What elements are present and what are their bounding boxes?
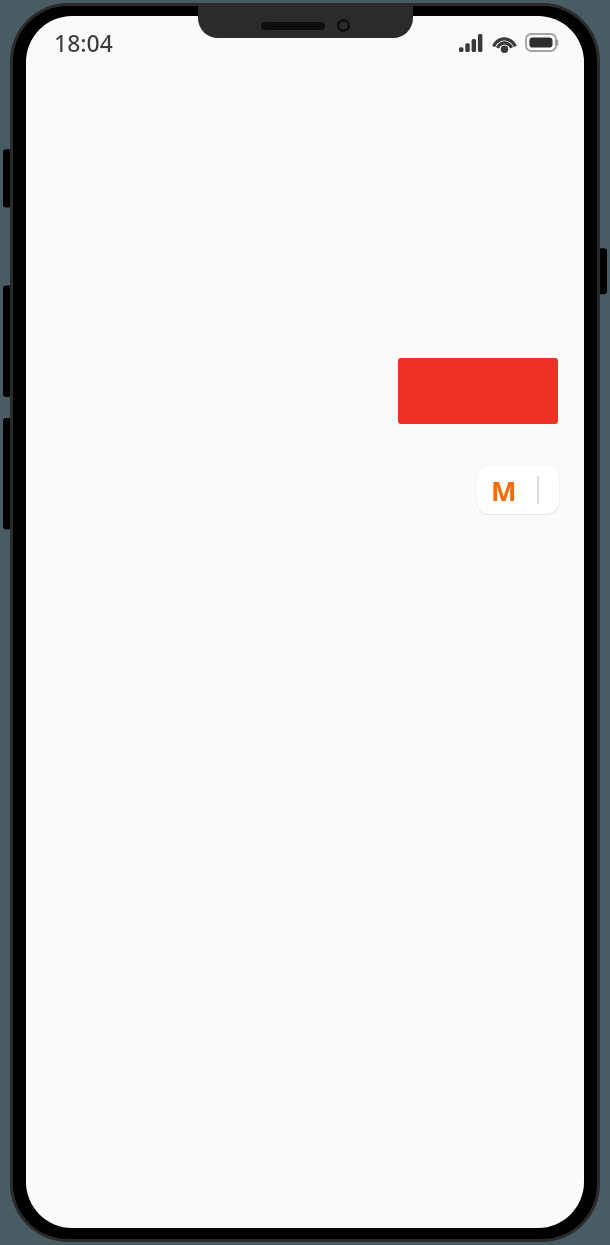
staticText: 18:04 — [54, 27, 113, 58]
button[interactable]: Mail app shortcut — [477, 466, 559, 514]
button[interactable]: Advertisement banner — [398, 358, 558, 424]
staticText: M — [491, 472, 517, 509]
